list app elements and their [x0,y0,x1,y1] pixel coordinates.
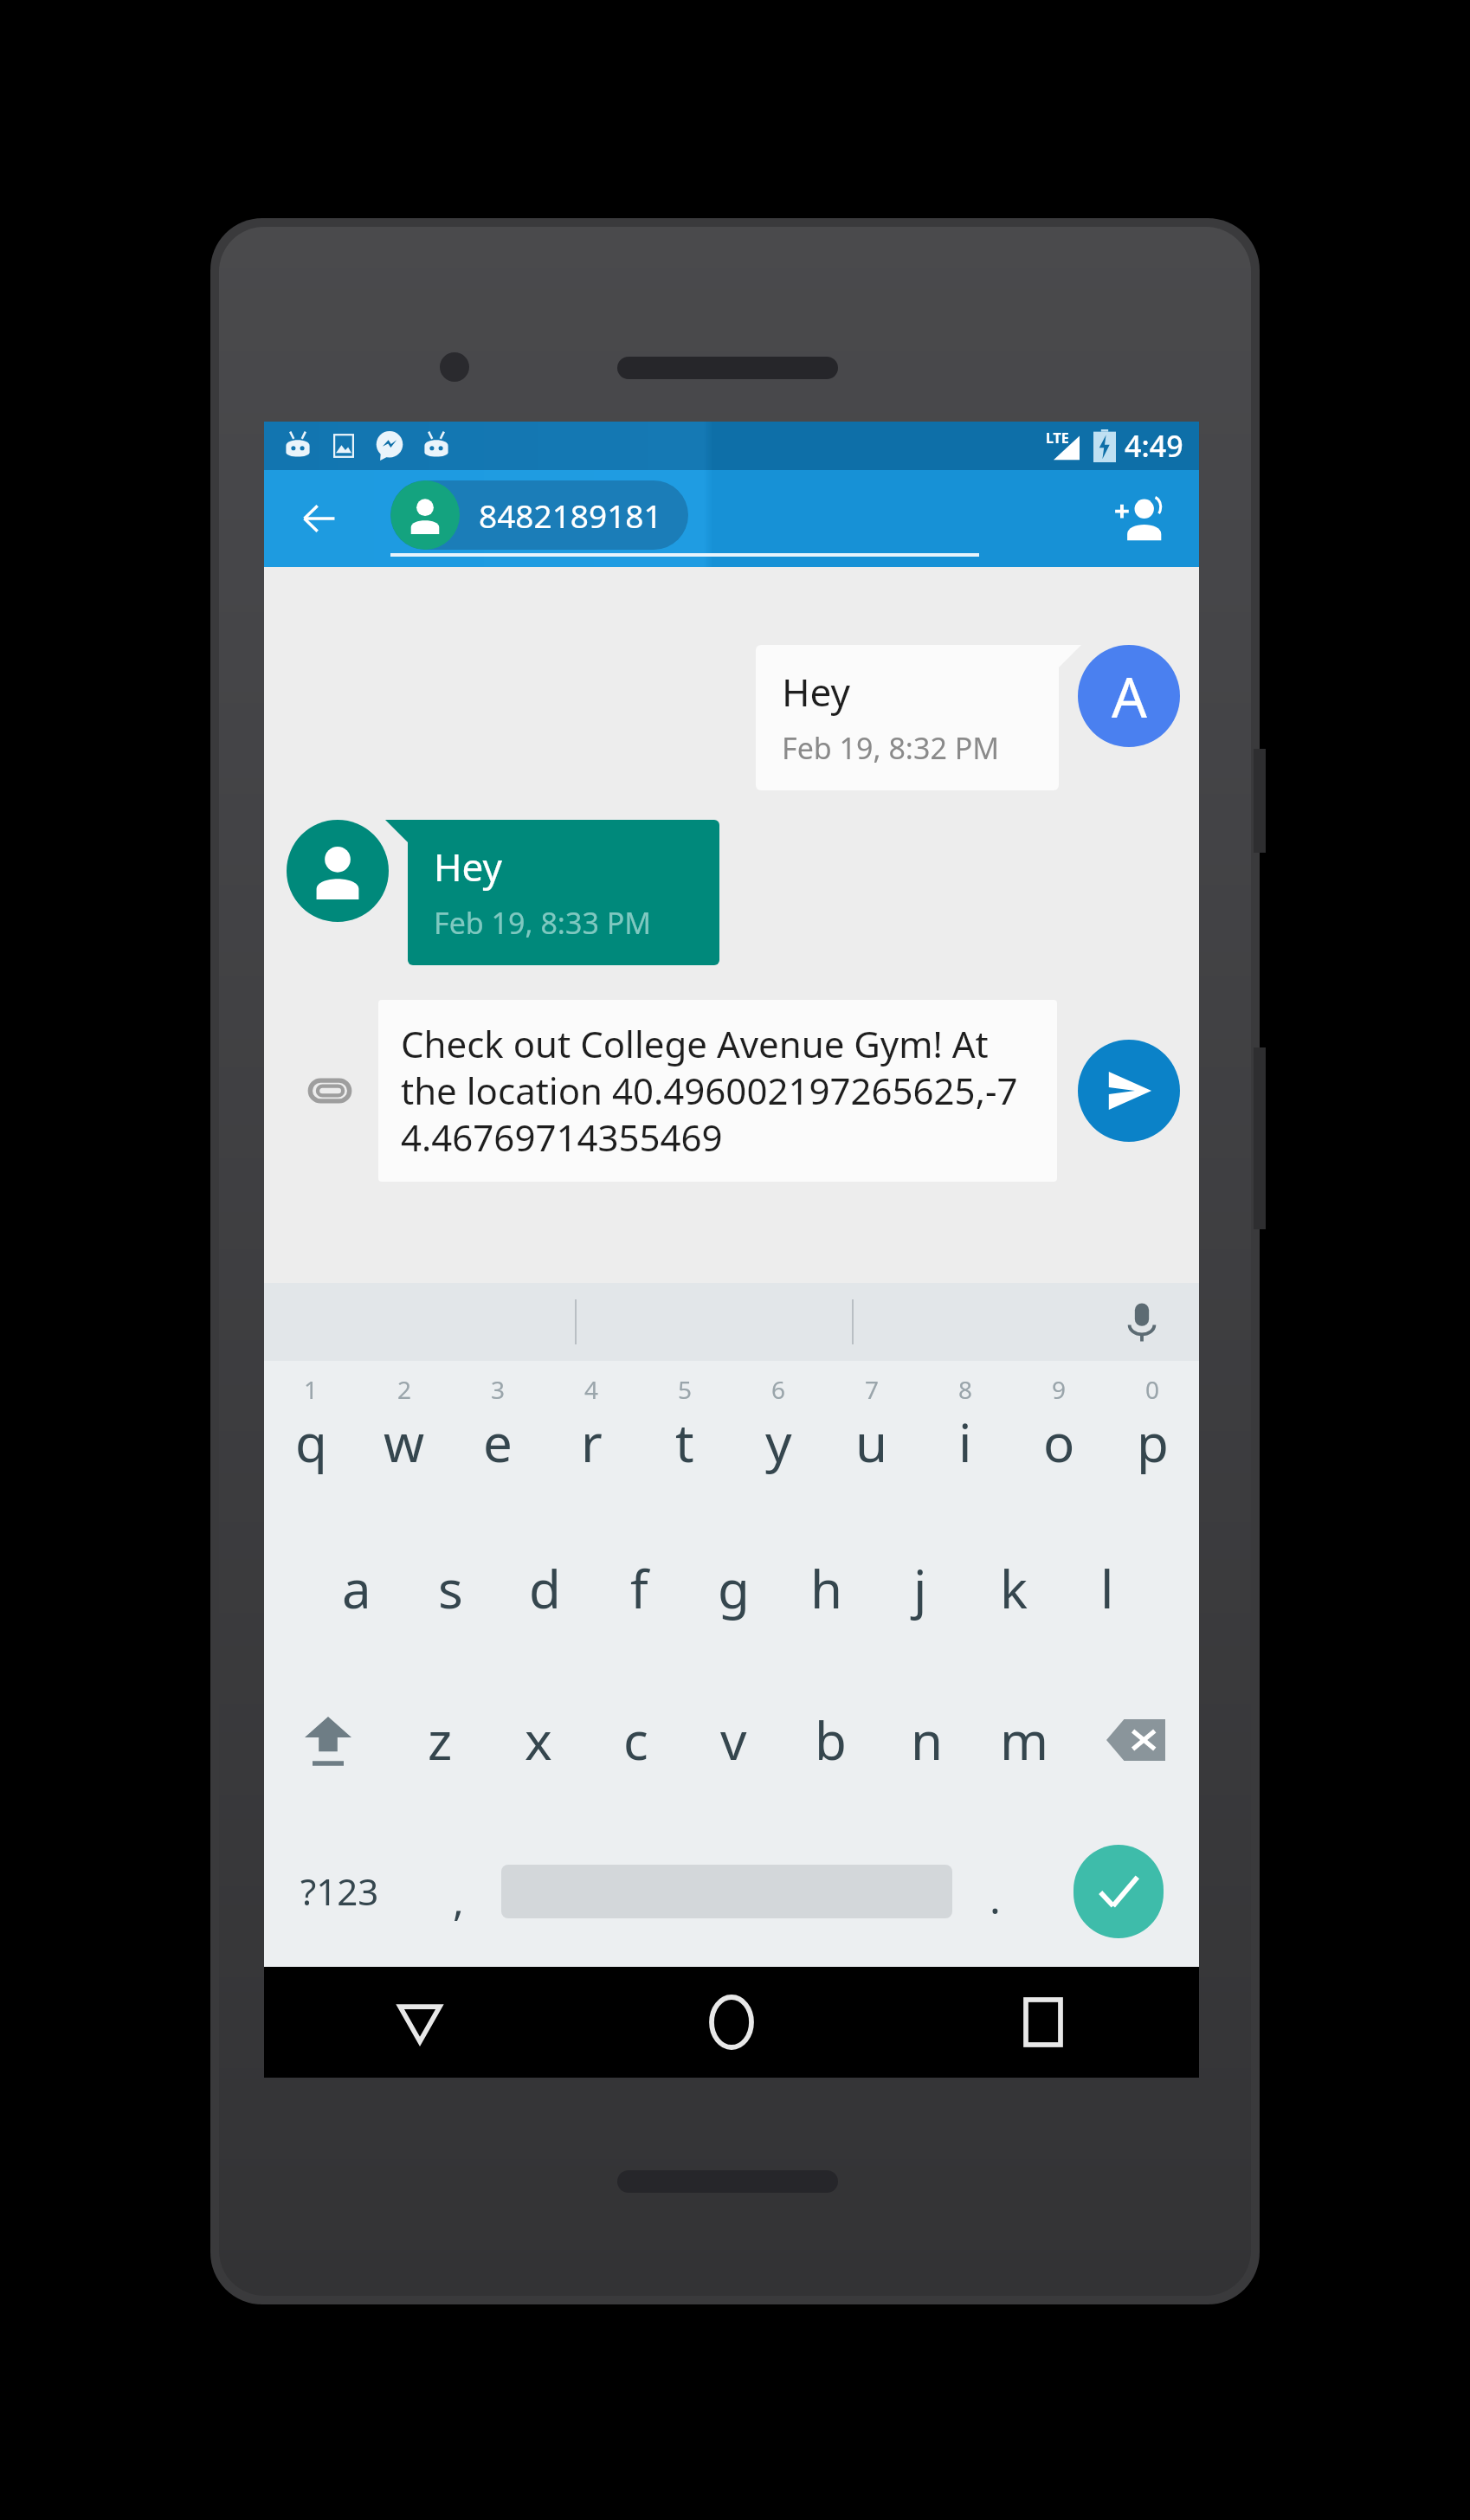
button[interactable]: m [976,1664,1073,1815]
staticText: p [1137,1407,1169,1478]
button[interactable]: n [879,1664,976,1815]
staticText: , [453,1872,464,1928]
button[interactable]: Enter [1038,1815,1199,1967]
staticText: q [295,1407,327,1478]
button[interactable]: Attach [287,1047,373,1134]
button[interactable]: Hey [756,645,1059,790]
staticText: v [720,1705,747,1776]
button[interactable]: d [498,1512,592,1664]
staticText: s [438,1553,463,1624]
button[interactable]: Backspace [1073,1664,1199,1815]
button[interactable]: k [967,1512,1061,1664]
button[interactable]: Shift [264,1664,391,1815]
staticText: c [623,1705,648,1776]
staticText: j [913,1553,927,1624]
button[interactable]: a [309,1512,403,1664]
button[interactable]: 8482189181 [390,480,688,550]
staticText: g [718,1553,750,1624]
button[interactable]: 5 [638,1361,732,1512]
staticText: m [1000,1705,1049,1776]
button[interactable]: Voice input [1111,1291,1173,1353]
staticText: 0 [1145,1373,1160,1406]
staticText: 4 [584,1373,599,1406]
staticText: b [815,1705,847,1776]
staticText: 3 [491,1373,506,1406]
button[interactable]: z [391,1664,489,1815]
staticText: l [1100,1553,1114,1624]
button[interactable]: v [685,1664,782,1815]
staticText: Feb 19, 8:33 PM [434,903,652,943]
button[interactable]: Check out College Avenue Gym! At the loc… [378,1000,1057,1182]
button[interactable]: f [592,1512,687,1664]
staticText: i [958,1407,972,1478]
button[interactable]: Send [1078,1040,1180,1142]
button[interactable]: Space [501,1846,952,1936]
button[interactable]: Back [264,1967,576,2078]
staticText: n [911,1705,944,1776]
staticText: 6 [771,1373,786,1406]
staticText: LTE [1046,429,1069,448]
staticText: Hey [434,841,502,893]
staticText: z [428,1705,453,1776]
staticText: r [581,1407,603,1478]
staticText: a [342,1553,371,1624]
staticText: Check out College Avenue Gym! At the loc… [401,1019,1035,1163]
staticText: 5 [678,1373,693,1406]
button[interactable]: 9 [1012,1361,1106,1512]
staticText: f [630,1553,648,1624]
button[interactable]: Home [576,1967,887,2078]
button[interactable]: 4 [545,1361,638,1512]
button[interactable]: 1 [264,1361,358,1512]
button[interactable]: 0 [1106,1361,1199,1512]
staticText: h [810,1553,843,1624]
button[interactable]: ?123 [264,1815,416,1967]
button[interactable]: h [780,1512,874,1664]
staticText: 7 [865,1373,880,1406]
button[interactable]: g [687,1512,780,1664]
staticText: 2 [397,1373,412,1406]
button[interactable]: s [403,1512,498,1664]
staticText: 4:49 [1125,426,1183,466]
staticText: w [384,1407,425,1478]
staticText: o [1043,1407,1075,1478]
button[interactable]: Back [283,482,356,555]
button[interactable]: b [782,1664,879,1815]
staticText: e [483,1407,513,1478]
staticText: x [525,1705,552,1776]
staticText: d [529,1553,561,1624]
button[interactable]: Hey [408,820,719,965]
staticText: 8 [958,1373,973,1406]
staticText: k [1000,1553,1028,1624]
staticText: y [765,1407,792,1478]
staticText: A [1112,659,1147,734]
staticText: 8482189181 [479,493,662,537]
button[interactable]: 3 [451,1361,545,1512]
button[interactable]: Add people [1102,482,1175,555]
button[interactable]: j [874,1512,967,1664]
staticText: 9 [1052,1373,1067,1406]
staticText: Hey [782,666,850,718]
staticText: Feb 19, 8:32 PM [782,728,1000,768]
button[interactable]: 7 [825,1361,919,1512]
button[interactable]: c [587,1664,685,1815]
button[interactable]: x [489,1664,587,1815]
staticText: u [855,1407,888,1478]
button[interactable]: l [1061,1512,1154,1664]
staticText: ?123 [300,1866,379,1916]
button[interactable]: 6 [732,1361,825,1512]
staticText: t [675,1407,694,1478]
button[interactable]: 8 [919,1361,1012,1512]
button[interactable]: 2 [358,1361,451,1512]
button[interactable]: . [952,1815,1038,1967]
button[interactable]: , [416,1815,501,1967]
staticText: . [990,1870,1001,1926]
staticText: 1 [304,1373,319,1406]
button[interactable]: Recents [887,1967,1199,2078]
